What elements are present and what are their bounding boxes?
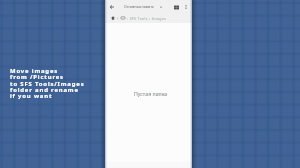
staticText: from /Pictures	[10, 73, 64, 81]
button[interactable]: Grid view	[171, 2, 181, 12]
staticText: ›	[117, 15, 119, 21]
button[interactable]: More options	[181, 2, 190, 11]
staticText: to SFS Tools/Images	[10, 80, 85, 88]
staticText: › SFS Tools › Images	[127, 16, 167, 21]
button[interactable]: Back	[107, 2, 117, 12]
staticText: Move images	[10, 67, 59, 75]
staticText: if you want	[10, 92, 53, 100]
staticText: folder and rename	[10, 86, 79, 94]
staticText: Основная память	[124, 4, 154, 9]
staticText: Пустая папка	[134, 90, 168, 97]
